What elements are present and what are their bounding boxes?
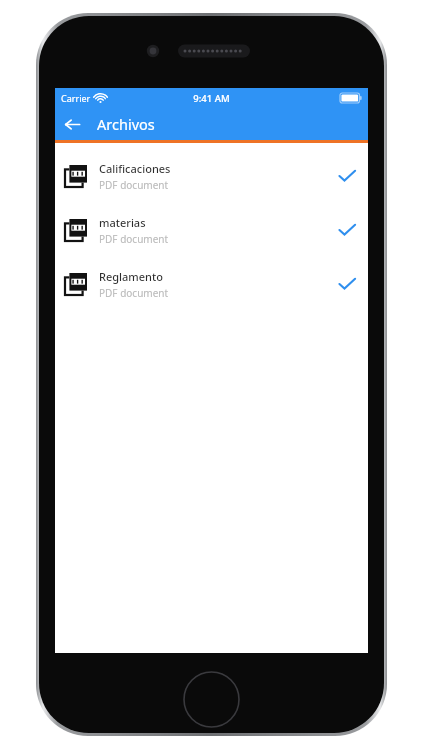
other: Selected — [338, 169, 356, 183]
staticText: PDF document — [99, 286, 169, 300]
staticText: Archivos — [97, 114, 155, 134]
staticText: 9:41 AM — [193, 92, 230, 105]
staticText: Reglamento — [99, 269, 163, 284]
staticText: materias — [99, 215, 146, 230]
staticText: PDF document — [99, 178, 169, 192]
button[interactable]: Calificaciones — [55, 149, 368, 203]
other: Selected — [338, 223, 356, 237]
button[interactable]: materias — [55, 203, 368, 257]
staticText: Carrier — [61, 92, 91, 104]
button[interactable]: Reglamento — [55, 257, 368, 311]
staticText: Calificaciones — [99, 161, 171, 176]
button[interactable]: Back — [55, 108, 89, 140]
other: Selected — [338, 277, 356, 291]
staticText: PDF document — [99, 232, 169, 246]
